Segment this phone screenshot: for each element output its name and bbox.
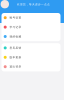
button[interactable]: 意见反馈	[1, 43, 60, 53]
button[interactable]: 学习记录	[1, 22, 60, 32]
staticText: 账号设置	[9, 16, 21, 19]
staticText: 意见反馈	[9, 46, 21, 50]
staticText: 退出登录	[9, 65, 21, 68]
button[interactable]: 版本更新	[1, 53, 60, 62]
button[interactable]: 账号设置	[1, 13, 60, 22]
staticText: 版本更新	[9, 56, 21, 59]
staticText: 欢迎您，每天进步一点点	[17, 3, 50, 6]
staticText: 我的收藏	[9, 35, 21, 38]
staticText: 学习记录	[9, 25, 21, 29]
button[interactable]: 我的收藏	[1, 32, 60, 41]
button[interactable]: 退出登录	[1, 62, 60, 71]
button[interactable]: Profile photo	[1, 0, 9, 8]
